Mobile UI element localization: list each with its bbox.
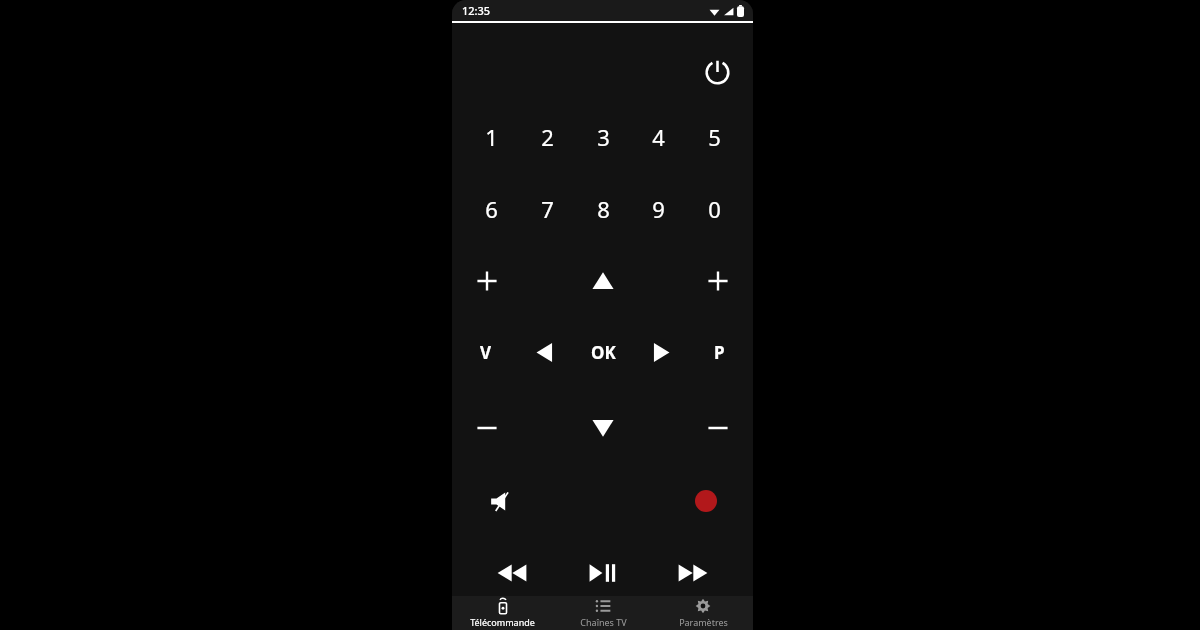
staticText: 4 [652,122,665,152]
button[interactable]: Record [685,480,727,522]
button[interactable]: Mute [478,480,520,522]
button[interactable]: Program down [695,405,741,451]
button[interactable]: 9 [637,190,679,228]
staticText: V [480,341,492,364]
button[interactable]: P [699,332,739,372]
button[interactable]: V [466,332,506,372]
button[interactable]: 5 [693,118,735,156]
button[interactable]: 8 [582,190,624,228]
staticText: 5 [708,122,721,152]
button[interactable]: Rewind [490,551,534,595]
button[interactable]: 2 [526,118,568,156]
staticText: 0 [708,194,721,224]
staticText: Télécommande [470,616,535,628]
button[interactable]: Volume up [464,258,510,304]
button[interactable]: 6 [470,190,512,228]
button[interactable]: Fast forward [671,551,715,595]
button[interactable]: OK [583,332,623,372]
staticText: 2 [541,122,554,152]
staticText: Paramètres [679,616,728,628]
button[interactable]: Volume down [464,405,510,451]
staticText: 9 [652,194,665,224]
staticText: Chaînes TV [580,616,627,628]
button[interactable]: 1 [470,118,512,156]
button[interactable]: Left [524,332,564,372]
button[interactable]: 7 [526,190,568,228]
button[interactable]: Power [695,50,739,94]
button[interactable]: Paramètres [653,598,753,628]
button[interactable]: 0 [693,190,735,228]
staticText: P [714,341,725,364]
button[interactable]: Chaînes TV [553,598,653,628]
button[interactable]: Télécommande [452,598,553,628]
staticText: 7 [541,194,554,224]
staticText: OK [591,341,616,364]
staticText: 3 [597,122,610,152]
button[interactable]: Channel up [580,258,626,304]
button[interactable]: Play pause [581,551,625,595]
staticText: 6 [485,194,498,224]
staticText: 8 [597,194,610,224]
button[interactable]: 4 [637,118,679,156]
button[interactable]: 3 [582,118,624,156]
button[interactable]: Right [641,332,681,372]
button[interactable]: Program up [695,258,741,304]
button[interactable]: Channel down [580,405,626,451]
staticText: 12:35 [462,3,491,18]
staticText: 1 [485,122,498,152]
